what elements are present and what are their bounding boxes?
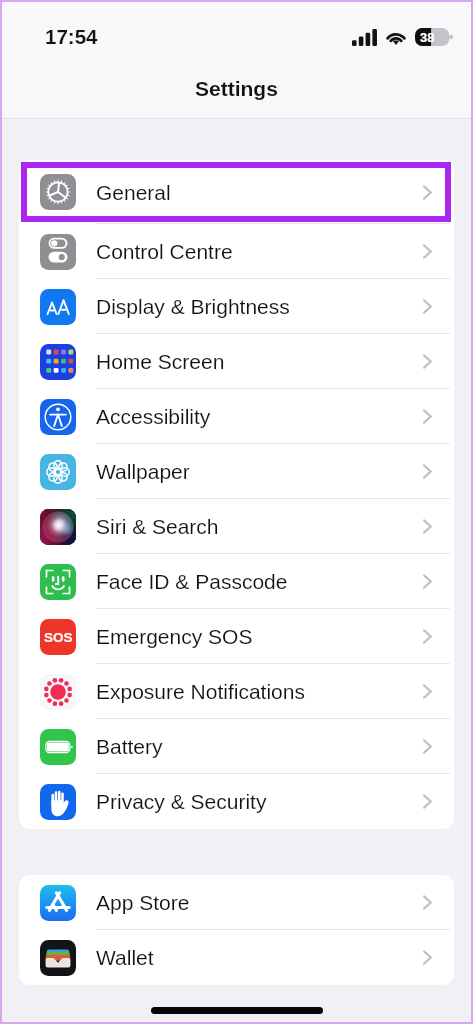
staticText: Battery — [96, 735, 163, 758]
staticText: General — [96, 181, 171, 204]
button[interactable]: Home Screen — [19, 334, 454, 389]
button[interactable]: Siri & Search — [19, 499, 454, 554]
staticText: App Store — [96, 891, 190, 914]
staticText: 17:54 — [45, 25, 98, 48]
staticText: SOS — [44, 630, 73, 645]
staticText: Exposure Notifications — [96, 680, 305, 703]
button[interactable]: Wallet — [19, 930, 454, 985]
staticText: Privacy & Security — [96, 790, 267, 813]
button[interactable]: Wallpaper — [19, 444, 454, 499]
staticText: Face ID & Passcode — [96, 570, 288, 593]
staticText: Wallet — [96, 946, 154, 969]
button[interactable]: Battery — [19, 719, 454, 774]
staticText: Wallpaper — [96, 460, 190, 483]
button[interactable]: App Store — [19, 875, 454, 930]
button[interactable]: Exposure Notifications — [19, 664, 454, 719]
button[interactable]: Display & Brightness — [19, 279, 454, 334]
staticText: Emergency SOS — [96, 625, 253, 648]
button[interactable]: Privacy & Security — [19, 774, 454, 829]
staticText: Siri & Search — [96, 515, 219, 538]
staticText: 38 — [420, 30, 435, 45]
button[interactable]: Control Centre — [19, 224, 454, 279]
button[interactable]: General — [19, 160, 454, 224]
button[interactable]: Face ID & Passcode — [19, 554, 454, 609]
staticText: Home Screen — [96, 350, 225, 373]
staticText: Control Centre — [96, 240, 233, 263]
staticText: Settings — [195, 77, 278, 100]
button[interactable]: Accessibility — [19, 389, 454, 444]
staticText: Accessibility — [96, 405, 211, 428]
staticText: Display & Brightness — [96, 295, 290, 318]
button[interactable]: SOS — [19, 609, 454, 664]
